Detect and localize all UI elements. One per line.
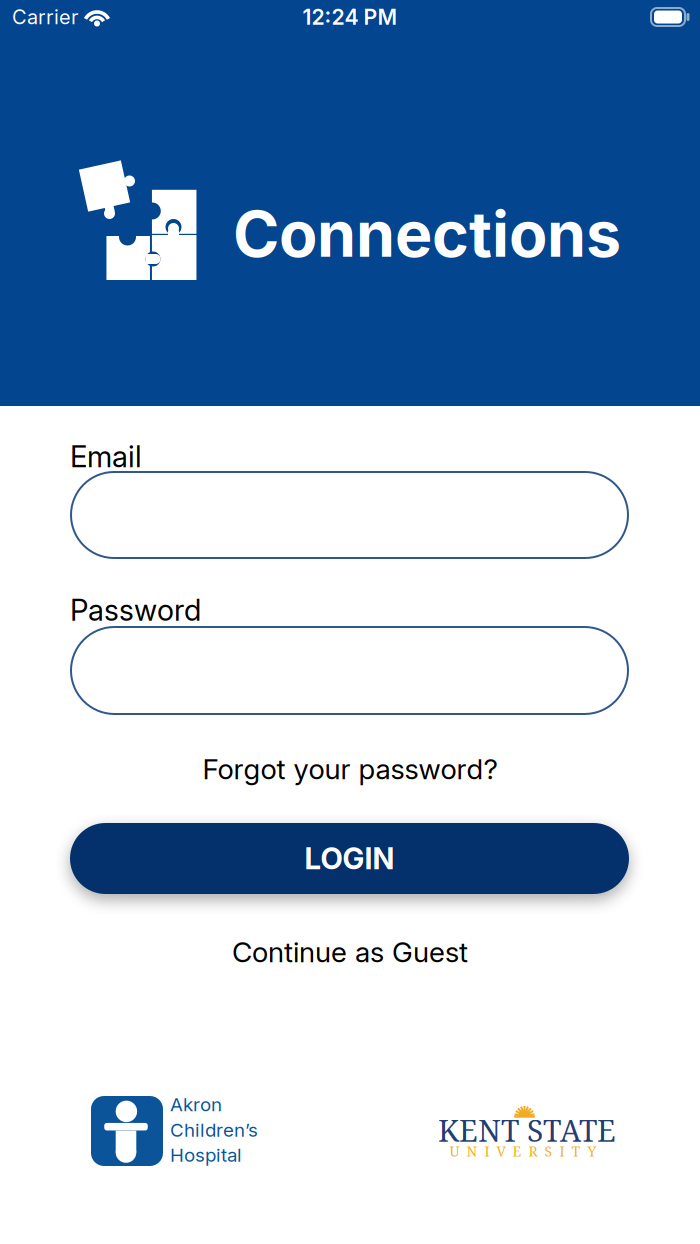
button[interactable]: LOGIN — [70, 823, 629, 894]
button[interactable]: Forgot your password? — [202, 752, 497, 785]
staticText: Password — [70, 593, 201, 627]
staticText: Carrier — [12, 5, 78, 29]
staticText: Akron — [170, 1093, 222, 1115]
staticText: Children’s — [170, 1119, 258, 1141]
staticText: Forgot your password? — [202, 752, 497, 785]
button[interactable] — [70, 471, 629, 559]
staticText: Connections — [233, 197, 621, 271]
staticText: Email — [70, 439, 142, 474]
staticText: Continue as Guest — [232, 935, 468, 968]
staticText: KENT STATE — [438, 1110, 616, 1150]
staticText: LOGIN — [304, 841, 394, 876]
staticText: 12:24 PM — [302, 4, 397, 30]
button[interactable]: Continue as Guest — [232, 935, 468, 968]
button[interactable] — [70, 626, 629, 715]
staticText: Hospital — [170, 1144, 242, 1166]
staticText: UNIVERSITY — [449, 1141, 596, 1161]
